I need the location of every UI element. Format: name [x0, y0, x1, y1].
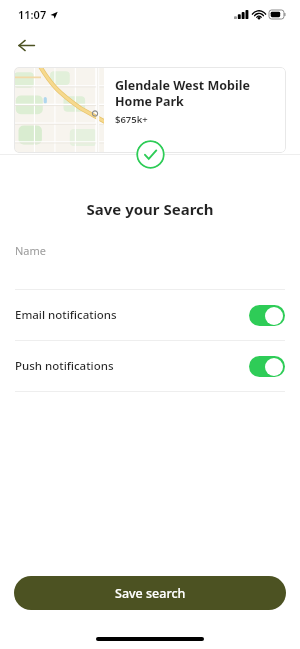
button[interactable]: Name — [0, 239, 300, 290]
button[interactable]: Back — [10, 29, 42, 61]
staticText: Glendale West Mobile Home Park — [115, 77, 278, 109]
button[interactable]: Email notifications — [0, 290, 300, 340]
staticText: Save your Search — [0, 199, 300, 219]
staticText: Email notifications — [15, 307, 249, 323]
button[interactable]: Save search — [14, 576, 286, 610]
staticText: Push notifications — [15, 358, 249, 374]
staticText: Save search — [115, 585, 186, 602]
button[interactable]: Glendale West Mobile Home Park — [14, 67, 286, 153]
staticText: Name — [15, 243, 47, 258]
staticText: $675k+ — [115, 113, 148, 126]
staticText: 11:07 — [18, 7, 47, 22]
button[interactable]: Push notifications — [0, 341, 300, 391]
